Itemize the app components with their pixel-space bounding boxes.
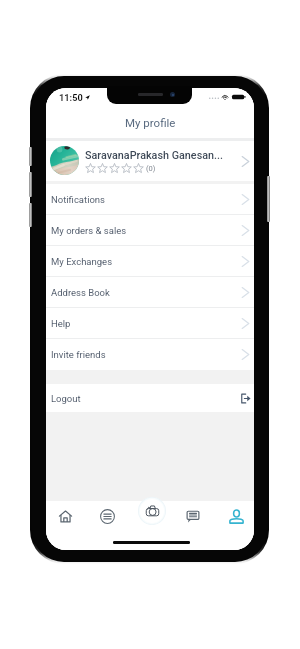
button[interactable]: Invite friends [46,339,254,370]
button[interactable]: Logout [46,384,254,412]
staticText: My profile [125,116,176,129]
button[interactable]: SaravanaPrakash Ganesan... [46,141,254,181]
staticText: Help [51,318,71,329]
button[interactable]: Help [46,308,254,339]
staticText: My Exchanges [51,256,113,267]
button[interactable]: My Exchanges [46,246,254,277]
button[interactable]: Notifications [46,184,254,215]
button[interactable]: Camera [138,497,166,525]
staticText: 11:50 [59,92,83,103]
button[interactable]: Address Book [46,277,254,308]
staticText: (0) [146,164,156,173]
staticText: Logout [51,393,81,404]
staticText: Notifications [51,194,106,205]
button[interactable]: Profile [225,505,247,527]
button[interactable]: Messages [182,505,204,527]
button[interactable]: Listings [96,505,118,527]
button[interactable]: My orders & sales [46,215,254,246]
staticText: SaravanaPrakash Ganesan... [85,149,224,162]
staticText: My orders & sales [51,225,127,236]
staticText: Address Book [51,287,110,298]
button[interactable]: Home [54,505,76,527]
staticText: Invite friends [51,349,106,360]
